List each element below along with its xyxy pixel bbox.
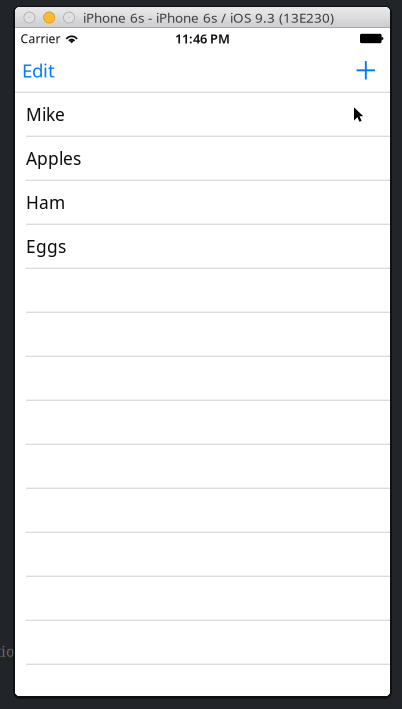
button[interactable]: Edit [15,49,65,92]
button[interactable] [15,357,390,401]
button[interactable]: Close [23,12,35,23]
button[interactable]: Ham [15,181,390,225]
button[interactable] [15,533,390,577]
button[interactable]: Minimize [43,12,55,23]
button[interactable] [15,269,390,313]
staticText: Eggs [26,235,66,258]
button[interactable] [15,489,390,533]
staticText: Ham [26,191,65,214]
button[interactable]: Add [347,49,390,92]
staticText: Apples [26,147,81,170]
button[interactable] [15,665,390,709]
button[interactable] [15,577,390,621]
button[interactable] [15,401,390,445]
button[interactable] [15,621,390,665]
staticText: Mike [26,103,65,126]
button[interactable] [15,445,390,489]
staticText: iPhone 6s - iPhone 6s / iOS 9.3 (13E230) [83,8,334,27]
button[interactable]: Eggs [15,225,390,269]
button[interactable]: Zoom [63,12,75,23]
button[interactable]: Apples [15,137,390,181]
staticText: Carrier [20,30,60,46]
button[interactable] [15,313,390,357]
staticText: Edit [22,58,55,83]
button[interactable]: Mike [15,93,390,137]
staticText: 11:46 PM [175,30,230,47]
staticText: tio [0,641,14,661]
